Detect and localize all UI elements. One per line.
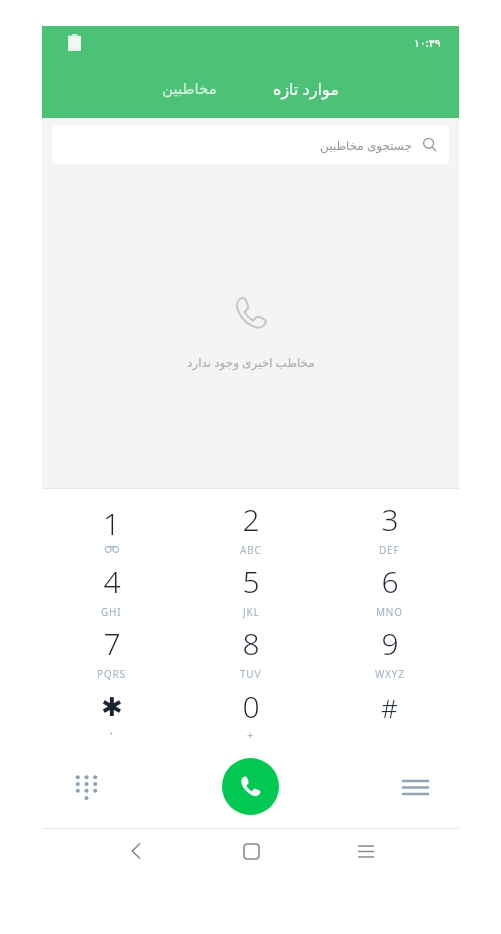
staticText: 8 [242,623,260,664]
button[interactable]: مخاطبین [144,72,235,105]
staticText: موارد تازه [273,78,339,100]
button[interactable]: 0 [181,683,320,745]
button[interactable]: 1 [42,497,181,559]
button[interactable]: Call [222,758,279,815]
staticText: 7 [103,623,121,664]
staticText: WXYZ [375,667,405,681]
staticText: 9 [381,623,399,664]
staticText: 5 [242,561,260,602]
staticText: ABC [240,543,262,557]
button[interactable]: موارد تازه [255,70,357,108]
button[interactable]: Home [229,829,273,873]
button[interactable]: 9 [320,621,459,683]
staticText: PQRS [97,667,126,681]
button[interactable]: 7 [42,621,181,683]
staticText: ✱ [101,692,123,722]
button[interactable]: Dialpad [62,763,110,811]
button[interactable]: 6 [320,559,459,621]
staticText: 6 [381,561,399,602]
staticText: GHI [101,605,122,619]
staticText: 2 [242,499,260,540]
button[interactable]: Menu [391,763,439,811]
button[interactable]: 2 [181,497,320,559]
staticText: , [110,722,114,737]
staticText: 0 [242,686,260,727]
button[interactable]: جستجوی مخاطبین [52,125,449,164]
staticText: JKL [243,605,260,619]
button[interactable]: ✱ [42,683,181,745]
button[interactable]: Recents [344,829,388,873]
staticText: 3 [381,499,399,540]
staticText: جستجوی مخاطبین [320,137,412,153]
staticText: مخاطب اخیری وجود ندارد [187,354,315,370]
button[interactable]: 5 [181,559,320,621]
staticText: 1 [103,503,121,544]
staticText: TUV [240,667,262,681]
staticText: ۱۰:۳۹ [414,35,441,50]
button[interactable]: Back [114,829,158,873]
staticText: # [381,690,398,725]
button[interactable]: # [320,683,459,745]
button[interactable]: 8 [181,621,320,683]
staticText: مخاطبین [162,80,217,97]
staticText: + [247,727,255,742]
button[interactable]: 4 [42,559,181,621]
staticText: DEF [379,543,400,557]
button[interactable]: 3 [320,497,459,559]
staticText: MNO [376,605,403,619]
staticText: 4 [103,561,121,602]
